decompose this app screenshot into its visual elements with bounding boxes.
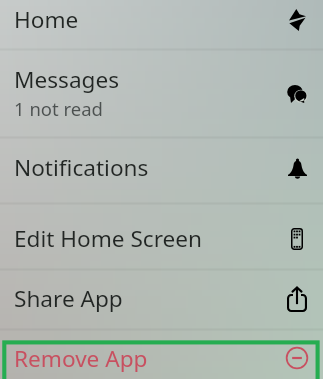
staticText: Messages (14, 64, 120, 95)
other: Edit Home Screen (284, 226, 310, 252)
staticText: Notifications (14, 152, 149, 183)
other: Home (284, 7, 310, 33)
button[interactable]: Home (0, 0, 323, 49)
button[interactable]: Notifications (0, 138, 323, 203)
button[interactable]: Remove App (0, 330, 323, 368)
other: Notifications (284, 155, 310, 181)
staticText: Home (14, 4, 79, 35)
staticText: 1 not read (14, 96, 103, 121)
button[interactable]: Messages (0, 50, 323, 137)
staticText: Edit Home Screen (14, 223, 203, 254)
other: Messages, 1 not read (284, 81, 310, 107)
button[interactable]: Edit Home Screen (0, 204, 323, 269)
staticText: Share App (14, 283, 123, 314)
other: Remove App (284, 345, 310, 371)
staticText: Remove App (14, 343, 148, 374)
other: Share App (284, 286, 310, 312)
button[interactable]: Share App (0, 270, 323, 329)
